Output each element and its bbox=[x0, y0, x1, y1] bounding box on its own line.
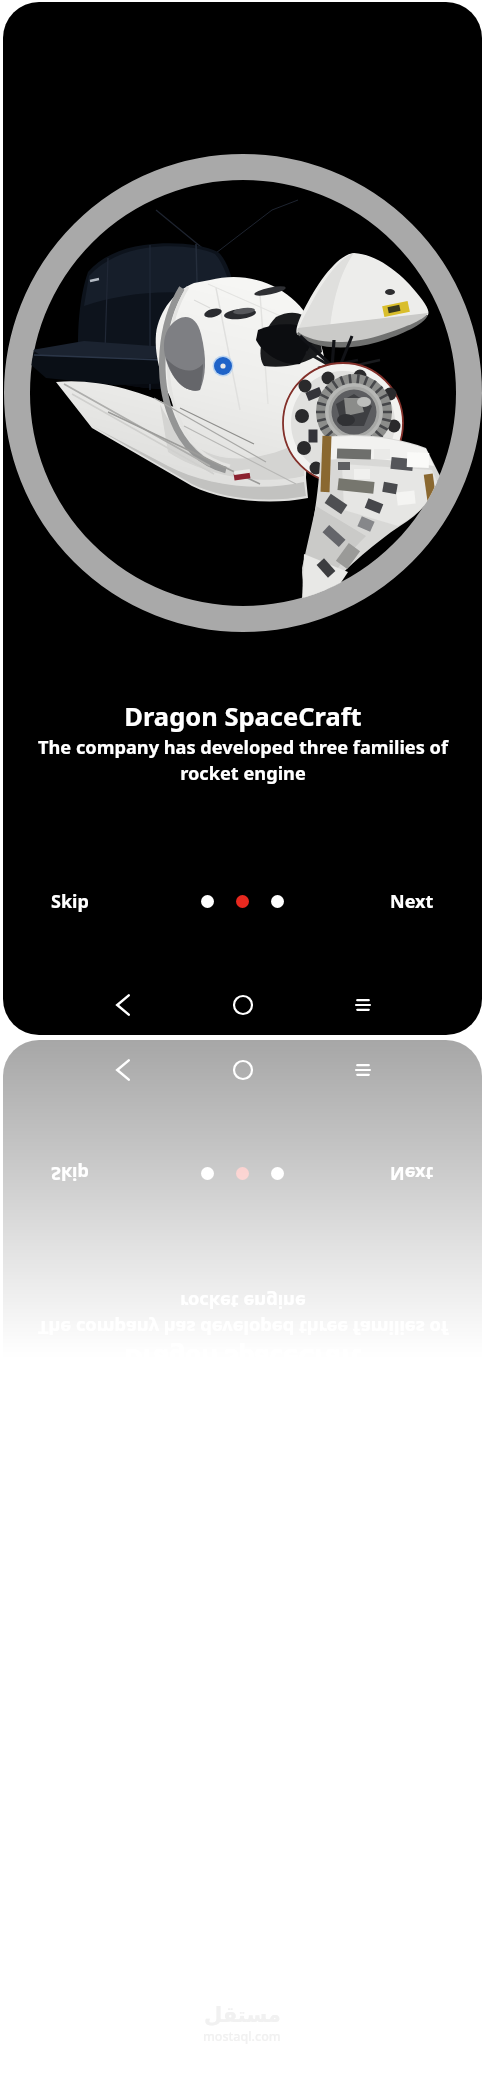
button[interactable] bbox=[236, 895, 249, 908]
staticText: Skip bbox=[51, 1161, 89, 1186]
button[interactable]: Home bbox=[211, 973, 275, 1035]
button[interactable] bbox=[271, 895, 284, 908]
button[interactable]: Skip bbox=[41, 883, 99, 920]
staticText: Dragon SpaceCraft bbox=[124, 699, 362, 734]
button[interactable] bbox=[271, 1167, 284, 1180]
button[interactable]: Next bbox=[380, 1155, 444, 1192]
button[interactable] bbox=[201, 895, 214, 908]
staticText: Skip bbox=[51, 889, 89, 914]
button[interactable]: Skip bbox=[41, 1155, 99, 1192]
staticText: Next bbox=[390, 889, 434, 914]
staticText: Next bbox=[390, 1161, 434, 1186]
staticText: مستقل bbox=[204, 2003, 281, 2027]
button[interactable]: Back bbox=[91, 973, 155, 1035]
staticText: The company has developed three families… bbox=[31, 735, 455, 786]
button[interactable] bbox=[236, 1167, 249, 1180]
staticText: The company has developed three families… bbox=[31, 1289, 455, 1340]
button[interactable]: Recent apps bbox=[331, 973, 395, 1035]
button[interactable]: Next bbox=[380, 883, 444, 920]
staticText: mostaql.com bbox=[203, 2028, 281, 2045]
button[interactable]: Home bbox=[211, 1040, 275, 1102]
button[interactable]: Back bbox=[91, 1040, 155, 1102]
button[interactable]: Recent apps bbox=[331, 1040, 395, 1102]
button[interactable] bbox=[201, 1167, 214, 1180]
